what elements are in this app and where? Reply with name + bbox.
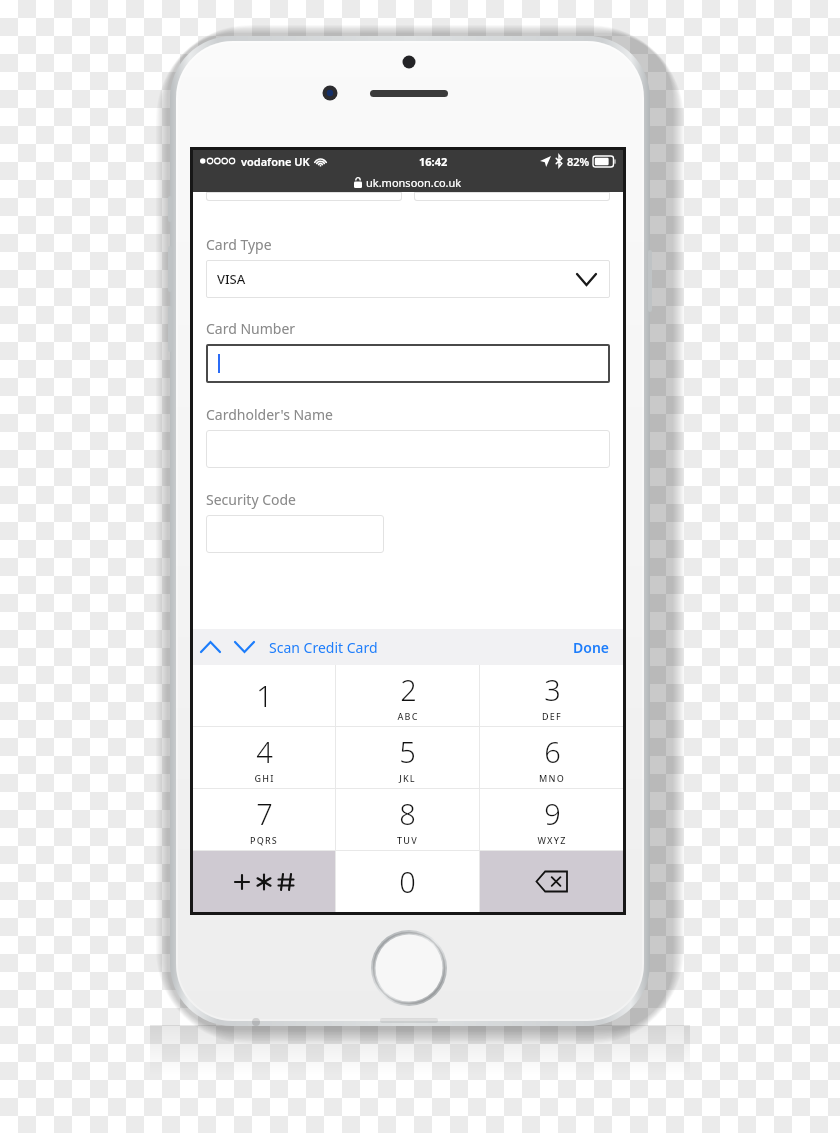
staticText: 2	[400, 670, 417, 709]
staticText: 16:42	[419, 154, 448, 169]
staticText: JKL	[399, 772, 416, 784]
button[interactable]: 6	[480, 727, 623, 788]
staticText: 82%	[567, 154, 590, 169]
button[interactable]: 7	[193, 789, 335, 850]
button[interactable]: 4	[193, 727, 335, 788]
staticText: 8	[399, 794, 416, 833]
staticText: ABC	[397, 710, 419, 722]
button[interactable]: 8	[336, 789, 479, 850]
button[interactable]: 3	[480, 665, 623, 726]
button[interactable]: Next field	[227, 629, 261, 665]
button[interactable]: 1	[193, 665, 335, 726]
staticText: 0	[399, 862, 416, 901]
staticText: GHI	[254, 772, 275, 784]
button[interactable]	[206, 430, 610, 468]
staticText: 7	[256, 794, 273, 833]
staticText: PQRS	[250, 834, 278, 846]
staticText: 6	[544, 732, 561, 771]
button[interactable]	[206, 344, 610, 383]
staticText: VISA	[217, 270, 246, 288]
button[interactable]: 2	[336, 665, 479, 726]
staticText: 4	[256, 732, 273, 771]
button[interactable]: Symbols	[193, 851, 335, 912]
staticText: 1	[256, 676, 273, 715]
button[interactable]: Done	[560, 632, 623, 663]
staticText: 9	[544, 794, 561, 833]
button[interactable]: Delete	[480, 851, 623, 912]
button[interactable]: VISA	[206, 260, 610, 298]
button[interactable]: 0	[336, 851, 479, 912]
staticText: Card Type	[206, 235, 272, 254]
staticText: Scan Credit Card	[269, 638, 378, 657]
staticText: DEF	[542, 710, 562, 722]
staticText: Cardholder's Name	[206, 405, 333, 424]
staticText: WXYZ	[537, 834, 567, 846]
button[interactable]	[206, 192, 402, 201]
staticText: Done	[573, 638, 610, 657]
button[interactable]: Previous field	[193, 629, 227, 665]
button[interactable]: Scan Credit Card	[267, 632, 380, 663]
staticText: 5	[399, 732, 416, 771]
staticText: TUV	[397, 834, 418, 846]
button[interactable]: 5	[336, 727, 479, 788]
staticText: vodafone UK	[241, 154, 310, 169]
staticText: Card Number	[206, 319, 296, 338]
staticText: uk.monsoon.co.uk	[366, 175, 462, 190]
button[interactable]	[206, 515, 384, 553]
staticText: 3	[544, 670, 561, 709]
staticText: MNO	[539, 772, 565, 784]
button[interactable]: 9	[480, 789, 623, 850]
button[interactable]	[414, 192, 610, 201]
staticText: Security Code	[206, 490, 297, 509]
